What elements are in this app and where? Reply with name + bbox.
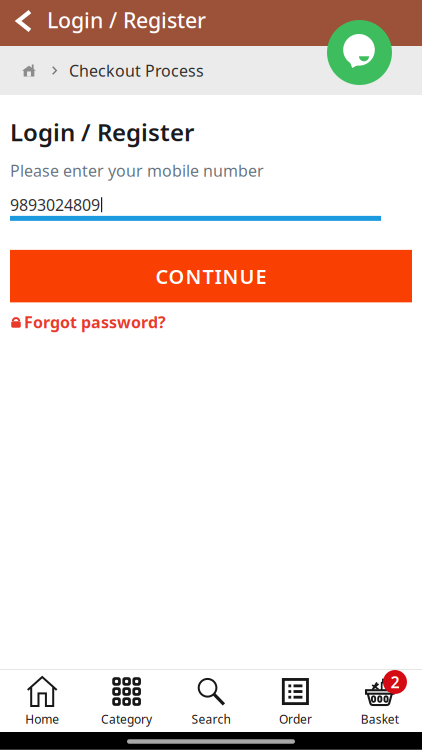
button[interactable]: Basket <box>338 670 422 732</box>
staticText: Please enter your mobile number <box>10 160 264 181</box>
staticText: Home <box>25 711 59 727</box>
button[interactable]: Home <box>0 46 48 95</box>
button[interactable]: Forgot password? <box>10 302 166 339</box>
button[interactable]: Back <box>0 0 44 46</box>
staticText: CONTINUE <box>155 263 266 289</box>
staticText: Checkout Process <box>69 60 204 81</box>
staticText: Login / Register <box>47 6 206 34</box>
button[interactable]: Category <box>84 670 169 732</box>
staticText: Search <box>191 711 230 727</box>
staticText: Login / Register <box>10 116 194 148</box>
button[interactable]: Search <box>169 670 253 732</box>
button[interactable]: Order <box>253 670 338 732</box>
button[interactable]: Chat <box>327 20 392 85</box>
staticText: Forgot password? <box>24 311 166 333</box>
staticText: Category <box>101 711 152 727</box>
button[interactable]: Checkout Process <box>57 46 210 95</box>
button[interactable]: CONTINUE <box>10 250 412 302</box>
staticText: Order <box>279 711 312 727</box>
button[interactable]: Home <box>0 670 84 732</box>
staticText: 9893024809 <box>10 194 100 215</box>
staticText: Basket <box>361 711 399 727</box>
staticText: 2 <box>390 671 399 693</box>
